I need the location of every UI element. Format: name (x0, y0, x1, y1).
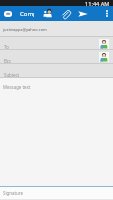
button[interactable]: Navigate up (1, 6, 14, 21)
button[interactable]: Pick contact (99, 52, 109, 62)
button[interactable]: Bcc (0, 50, 113, 64)
staticText: 11:44 AM (85, 0, 110, 6)
button[interactable]: Contacts (40, 6, 55, 21)
staticText: Bcc (4, 58, 12, 64)
button[interactable]: Subject (0, 64, 113, 78)
button[interactable]: justinapps@yahoo.com (0, 21, 113, 37)
staticText: justinapps@yahoo.com (3, 27, 47, 32)
button[interactable]: Compose (20, 6, 34, 21)
button[interactable]: Pick contact (99, 39, 109, 49)
button[interactable]: To (0, 37, 113, 50)
staticText: Compose (20, 10, 34, 18)
button[interactable]: Send (75, 6, 91, 21)
button[interactable]: Message text (0, 78, 113, 186)
staticText: Message text (3, 84, 31, 90)
button[interactable]: Signature (3, 190, 23, 196)
staticText: To (4, 44, 9, 50)
button[interactable]: More options (101, 6, 112, 21)
button[interactable]: Attach file (58, 6, 74, 21)
staticText: Subject (4, 72, 20, 78)
